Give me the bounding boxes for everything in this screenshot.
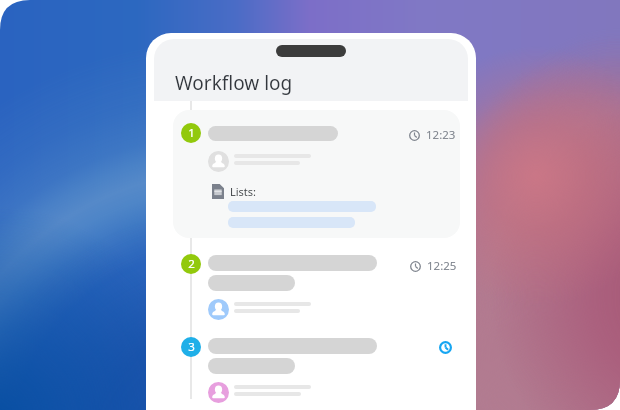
button[interactable]: 2 xyxy=(181,254,201,274)
button[interactable]: 3 xyxy=(154,329,468,409)
button[interactable]: 3 xyxy=(181,337,201,357)
staticText: 12:23 xyxy=(426,127,456,143)
staticText: Workflow log xyxy=(175,70,293,96)
staticText: Lists: xyxy=(230,184,257,199)
staticText: 2 xyxy=(188,256,195,272)
staticText: 12:25 xyxy=(427,258,457,274)
button[interactable]: 2 xyxy=(154,246,468,326)
button[interactable]: Scheduled time xyxy=(439,341,452,354)
staticText: 1 xyxy=(188,125,195,141)
button[interactable]: 1 xyxy=(181,123,201,143)
staticText: 3 xyxy=(188,339,195,355)
button[interactable]: 1 xyxy=(173,110,460,238)
